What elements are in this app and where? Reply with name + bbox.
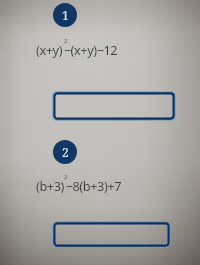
staticText: 2 [64,173,68,181]
staticText: (b+3) −8(b+3)+7 [36,177,122,194]
staticText: 2 [62,144,69,160]
staticText: 1 [62,7,69,23]
button[interactable]: Answer box [53,92,175,120]
staticText: 2 [64,37,68,45]
button[interactable]: 2 [53,140,77,164]
button[interactable]: 1 [53,3,77,27]
staticText: (x+y) −(x+y)−12 [36,41,118,58]
button[interactable]: Answer box [53,222,170,247]
